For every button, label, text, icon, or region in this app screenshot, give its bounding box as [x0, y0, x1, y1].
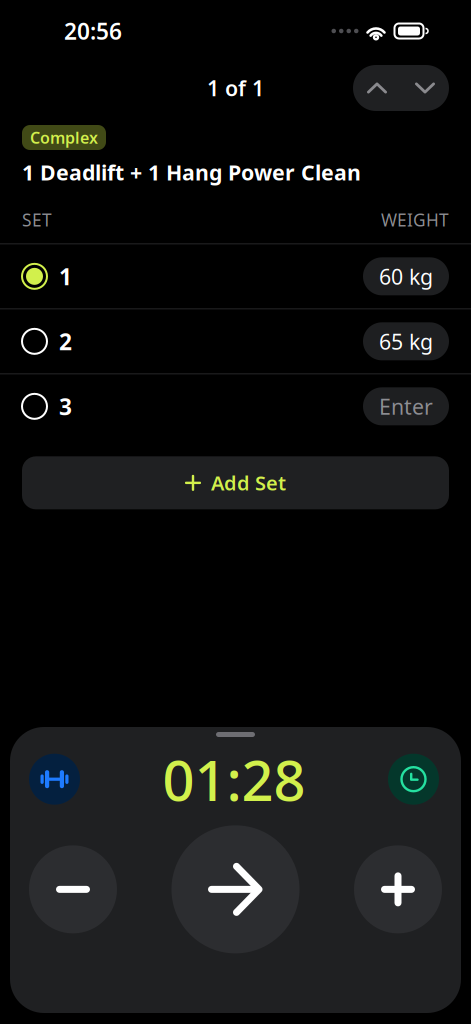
button[interactable]: Exercises	[29, 754, 80, 805]
button[interactable]: 1	[0, 244, 471, 308]
button[interactable]: Decrease	[29, 845, 117, 933]
button[interactable]: Previous exercise	[353, 65, 401, 111]
button[interactable]: 2	[0, 309, 471, 373]
button[interactable]: Add Set	[22, 456, 449, 509]
staticText: 3	[59, 391, 72, 421]
staticText: 01:28	[162, 742, 305, 816]
button[interactable]: Increase	[354, 845, 442, 933]
button[interactable]: Next	[171, 825, 299, 953]
button[interactable]: 3	[0, 374, 471, 438]
staticText: 1 Deadlift + 1 Hang Power Clean	[22, 158, 361, 186]
staticText: 65 kg	[379, 327, 433, 355]
staticText: Add Set	[211, 470, 286, 496]
staticText: Enter	[379, 392, 433, 420]
staticText: Complex	[30, 127, 98, 148]
staticText: 1 of 1	[207, 74, 264, 102]
button[interactable]: Next exercise	[401, 65, 449, 111]
staticText: 60 kg	[379, 262, 433, 290]
staticText: 1	[59, 261, 72, 291]
staticText: WEIGHT	[381, 208, 449, 231]
button[interactable]: Rest timer	[388, 754, 439, 805]
staticText: SET	[22, 208, 52, 231]
staticText: 2	[59, 326, 72, 356]
staticText: 20:56	[64, 16, 122, 46]
